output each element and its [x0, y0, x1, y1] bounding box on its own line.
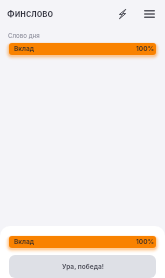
button[interactable]: Ура, победа!	[9, 255, 156, 278]
staticText: Ура, победа!	[62, 263, 104, 271]
staticText: Вклад	[14, 45, 35, 53]
button[interactable]: Вклад	[9, 236, 156, 248]
staticText: Финслово	[7, 8, 54, 19]
staticText: 100%	[136, 45, 155, 53]
button[interactable]: Menu	[139, 4, 159, 24]
button[interactable]: Boost	[112, 4, 132, 24]
button[interactable]: Вклад	[9, 43, 156, 55]
staticText: Вклад	[14, 238, 35, 246]
staticText: Слово дня	[8, 32, 40, 40]
staticText: 100%	[136, 238, 155, 246]
